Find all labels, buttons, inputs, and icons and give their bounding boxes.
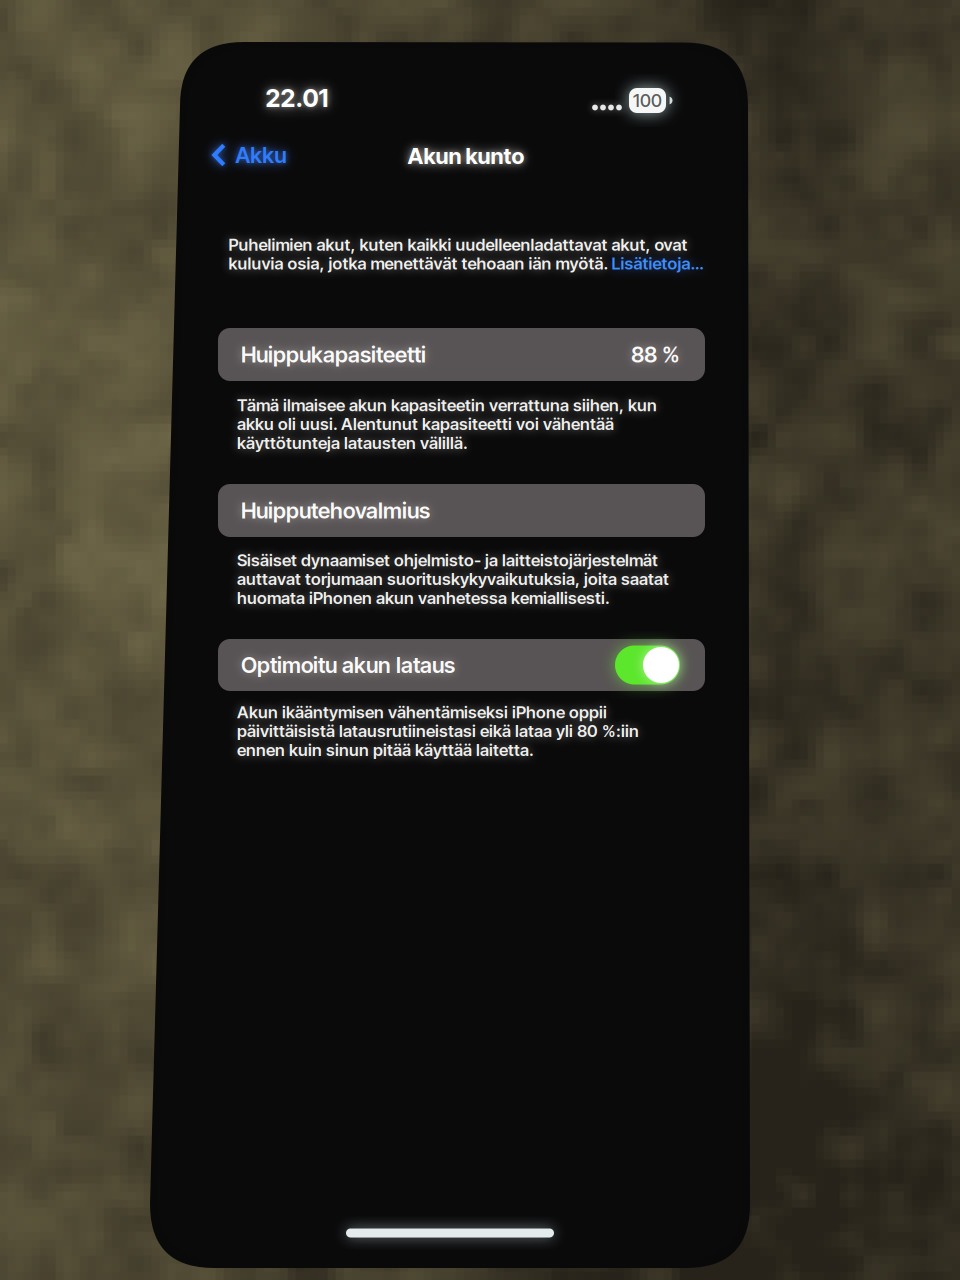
button[interactable]: Lisätietoja… bbox=[611, 253, 703, 273]
button[interactable]: Huipputehovalmius bbox=[218, 484, 705, 537]
staticText: 88 % bbox=[631, 341, 680, 368]
button[interactable]: Akku bbox=[212, 142, 286, 168]
staticText: Akku bbox=[235, 142, 286, 168]
staticText: 22.01 bbox=[265, 83, 328, 113]
staticText: Puhelimien akut, kuten kaikki uudelleenl… bbox=[228, 234, 687, 255]
staticText: Lisätietoja… bbox=[611, 253, 703, 273]
staticText: Huippukapasiteetti bbox=[241, 341, 426, 368]
staticText: Huipputehovalmius bbox=[241, 497, 430, 524]
staticText: kuluvia osia, jotka menettävät tehoaan i… bbox=[228, 253, 611, 273]
staticText: Optimoitu akun lataus bbox=[241, 652, 455, 678]
staticText: päivittäisistä latausrutiineistasi eikä … bbox=[237, 721, 639, 741]
staticText: käyttötunteja latausten välillä. bbox=[237, 433, 468, 453]
staticText: huomata iPhonen akun vanhetessa kemialli… bbox=[237, 588, 610, 608]
staticText: Akun kunto bbox=[407, 143, 524, 169]
button[interactable]: Huippukapasiteetti bbox=[218, 328, 705, 381]
staticText: ennen kuin sinun pitää käyttää laitetta. bbox=[237, 740, 534, 760]
button[interactable]: Optimoitu akun lataus bbox=[615, 645, 680, 684]
staticText: akku oli uusi. Alentunut kapasiteetti vo… bbox=[237, 414, 614, 434]
staticText: 100 bbox=[633, 90, 662, 111]
staticText: auttavat torjumaan suorituskykyvaikutuks… bbox=[237, 569, 669, 589]
staticText: Akun ikääntymisen vähentämiseksi iPhone … bbox=[237, 702, 607, 722]
staticText: Sisäiset dynaamiset ohjelmisto- ja laitt… bbox=[237, 550, 658, 570]
staticText: Tämä ilmaisee akun kapasiteetin verrattu… bbox=[237, 395, 657, 415]
button[interactable]: Optimoitu akun lataus bbox=[218, 639, 705, 691]
